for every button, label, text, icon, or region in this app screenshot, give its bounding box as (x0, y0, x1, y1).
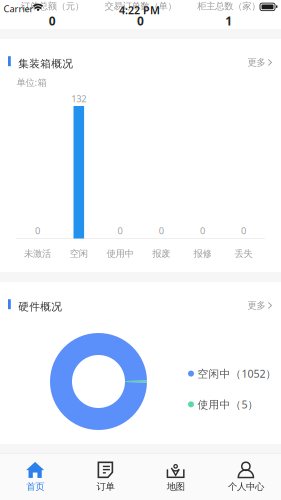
button[interactable]: 订单 (70, 454, 140, 500)
staticText: 单位:箱 (16, 76, 46, 88)
staticText: 132 (71, 92, 86, 105)
staticText: 报修 (193, 248, 211, 259)
staticText: 0 (200, 224, 205, 237)
staticText: 空闲 (70, 248, 88, 259)
staticText: 0 (117, 224, 122, 237)
staticText: 0 (49, 13, 56, 29)
staticText: 空闲中（1052） (197, 366, 276, 381)
staticText: 0 (137, 13, 144, 29)
staticText: 0 (159, 224, 164, 237)
staticText: 硬件概况 (18, 300, 62, 313)
staticText: 丢失 (235, 248, 253, 259)
staticText: 首页 (26, 481, 44, 492)
staticText: 使用中 (106, 248, 133, 259)
staticText: 个人中心 (228, 481, 264, 492)
button[interactable]: 首页 (0, 454, 70, 500)
staticText: Carrier (3, 2, 33, 15)
staticText: 订单 (96, 481, 114, 492)
staticText: 0 (241, 224, 246, 237)
staticText: 更多 (247, 57, 265, 68)
staticText: 未激活 (24, 248, 51, 259)
button[interactable]: 更多 (243, 54, 276, 71)
button[interactable]: 地图 (140, 454, 211, 500)
staticText: 集装箱概况 (18, 57, 73, 70)
staticText: 报废 (152, 248, 170, 259)
staticText: 4:22 PM (119, 3, 160, 17)
staticText: 使用中（5） (197, 397, 258, 411)
button[interactable]: 更多 (243, 297, 276, 314)
button[interactable]: 个人中心 (211, 454, 281, 500)
staticText: 更多 (247, 300, 265, 311)
staticText: 1 (225, 13, 232, 29)
staticText: 0 (35, 224, 40, 237)
staticText: 交易订单数（单） (104, 0, 176, 12)
staticText: 地图 (167, 481, 185, 492)
staticText: 订单总额（元） (21, 0, 84, 12)
staticText: 柜主总数（家） (197, 0, 260, 12)
